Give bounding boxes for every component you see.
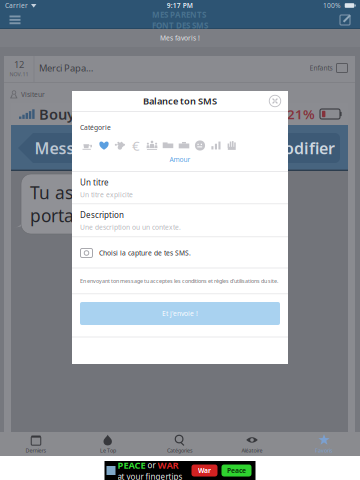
- button[interactable]: Amour: [96, 139, 112, 151]
- button[interactable]: Divers: [224, 139, 240, 151]
- staticText: Un titre explicite: [80, 190, 133, 199]
- button[interactable]: Et j'envoie !: [80, 302, 280, 325]
- staticText: Derniers: [25, 447, 46, 454]
- staticText: Enfants: [309, 64, 332, 72]
- staticText: Catégories: [167, 447, 193, 454]
- staticText: Mes favoris !: [160, 34, 200, 42]
- button[interactable]: Humour: [192, 139, 208, 151]
- button[interactable]: Favoris: [288, 432, 360, 456]
- button[interactable]: Aléatoire: [216, 432, 288, 456]
- button[interactable]: Rédiger: [334, 11, 356, 29]
- button[interactable]: Un titre: [72, 173, 288, 203]
- button[interactable]: Publicité: [104, 461, 255, 480]
- staticText: 9:17 PM: [167, 1, 193, 10]
- staticText: Merci Papa…: [39, 62, 93, 74]
- staticText: Catégorie: [80, 123, 111, 132]
- staticText: Modifier: [269, 137, 335, 159]
- button[interactable]: Travail: [160, 139, 176, 151]
- button[interactable]: Catégories: [144, 432, 216, 456]
- button[interactable]: Le Top: [72, 432, 144, 456]
- button[interactable]: Fermer: [264, 91, 286, 111]
- staticText: WAR: [157, 459, 178, 471]
- staticText: €: [132, 137, 140, 154]
- staticText: Tu as oublié de fermer le portail.: [30, 181, 234, 227]
- staticText: War: [198, 466, 211, 475]
- staticText: NOV. 11: [9, 71, 28, 78]
- button[interactable]: Argent: [128, 139, 144, 151]
- staticText: Messages: [34, 137, 110, 159]
- staticText: Peace: [227, 466, 246, 475]
- staticText: 12: [14, 58, 24, 71]
- staticText: or: [147, 460, 155, 470]
- button[interactable]: Santé: [176, 139, 192, 151]
- button[interactable]: Statistiques: [208, 139, 224, 151]
- staticText: 100%: [323, 1, 341, 10]
- button[interactable]: Choisi la capture de tes SMS.: [72, 240, 288, 266]
- staticText: Un titre: [80, 177, 109, 188]
- staticText: Visiteur: [21, 90, 45, 99]
- button[interactable]: Famille: [144, 139, 160, 151]
- staticText: Aléatoire: [241, 447, 262, 454]
- staticText: Carrier: [5, 1, 28, 10]
- staticText: Choisi la capture de tes SMS.: [99, 249, 191, 257]
- button[interactable]: Quotidien: [80, 139, 96, 151]
- staticText: MES PARENTS FONT DES SMS: [152, 9, 208, 31]
- staticText: PEACE: [117, 459, 145, 471]
- staticText: at your fingertips: [117, 471, 182, 480]
- staticText: Balance ton SMS: [143, 95, 217, 107]
- staticText: Description: [80, 209, 124, 220]
- staticText: Amour: [169, 155, 190, 164]
- staticText: Bouygues Telecom: [39, 104, 172, 124]
- button[interactable]: Derniers: [0, 432, 72, 456]
- staticText: Et j'envoie !: [162, 309, 198, 318]
- staticText: En envoyant ton message tu acceptes les …: [80, 277, 278, 285]
- staticText: 21%: [287, 105, 315, 123]
- staticText: Une description ou un contexte.: [80, 223, 181, 231]
- staticText: Favoris: [315, 447, 333, 454]
- staticText: Le Top: [100, 447, 116, 454]
- button[interactable]: Menu: [4, 11, 26, 29]
- button[interactable]: Description: [72, 205, 288, 235]
- button[interactable]: Animaux: [112, 139, 128, 151]
